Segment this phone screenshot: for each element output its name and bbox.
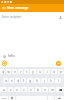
staticText: f <box>23 79 24 83</box>
button[interactable]: w <box>6 69 11 74</box>
button[interactable]: Shift <box>0 87 7 92</box>
button[interactable]: u <box>37 69 43 74</box>
button[interactable]: a <box>3 78 8 83</box>
staticText: a <box>5 79 7 83</box>
staticText: v <box>30 88 32 92</box>
staticText: s <box>11 79 13 83</box>
staticText: q <box>2 70 4 74</box>
staticText: g <box>29 79 31 83</box>
staticText: k <box>50 79 52 83</box>
staticText: u <box>39 70 41 74</box>
staticText: . <box>51 96 52 100</box>
button[interactable]: Send <box>53 60 64 67</box>
button[interactable]: s <box>9 78 14 83</box>
button[interactable]: ?123 <box>0 96 8 100</box>
staticText: x <box>16 88 18 92</box>
staticText: Enter recipient <box>2 15 57 19</box>
button[interactable]: . <box>48 96 54 100</box>
staticText: i <box>47 70 48 74</box>
button[interactable]: t <box>24 69 29 74</box>
button[interactable]: Change keyboard language <box>9 96 15 100</box>
staticText: m <box>51 88 54 92</box>
staticText: hello <box>8 54 15 58</box>
button[interactable]: c <box>21 87 27 92</box>
staticText: j <box>44 79 45 83</box>
staticText: h <box>36 79 38 83</box>
staticText: y <box>32 70 34 74</box>
staticText: z <box>10 88 12 92</box>
staticText: n <box>44 88 46 92</box>
button[interactable]: y <box>30 69 36 74</box>
button[interactable]: f <box>21 78 26 83</box>
button[interactable]: o <box>51 69 57 74</box>
staticText: l <box>58 79 59 83</box>
button[interactable]: x <box>14 87 20 92</box>
button[interactable]: g <box>27 78 33 83</box>
button[interactable]: k <box>48 78 54 83</box>
staticText: e <box>14 70 16 74</box>
button[interactable]: q <box>0 69 5 74</box>
button[interactable]: h <box>34 78 40 83</box>
staticText: d <box>17 79 19 83</box>
button[interactable]: l <box>55 78 61 83</box>
button[interactable]: v <box>28 87 34 92</box>
staticText: New message <box>7 6 29 10</box>
staticText: p <box>60 70 62 74</box>
button[interactable]: z <box>8 87 13 92</box>
staticText: b <box>37 88 39 92</box>
button[interactable]: Add recipient <box>57 14 63 20</box>
button[interactable]: Enter <box>55 96 64 100</box>
button[interactable]: b <box>35 87 41 92</box>
button[interactable]: Back <box>0 4 7 12</box>
button[interactable]: j <box>41 78 47 83</box>
staticText: w <box>7 70 10 74</box>
button[interactable]: d <box>15 78 20 83</box>
button[interactable]: e <box>12 69 17 74</box>
staticText: ?123 <box>2 97 7 100</box>
button[interactable]: Backspace <box>56 87 64 92</box>
button[interactable]: m <box>49 87 55 92</box>
staticText: t <box>26 70 28 74</box>
staticText: c <box>23 88 25 92</box>
button[interactable]: n <box>42 87 48 92</box>
button[interactable]: Add attachment <box>0 60 9 67</box>
button[interactable]: r <box>18 69 23 74</box>
staticText: r <box>20 70 22 74</box>
staticText: o <box>53 70 55 74</box>
button[interactable]: p <box>58 69 64 74</box>
button[interactable]: i <box>44 69 50 74</box>
